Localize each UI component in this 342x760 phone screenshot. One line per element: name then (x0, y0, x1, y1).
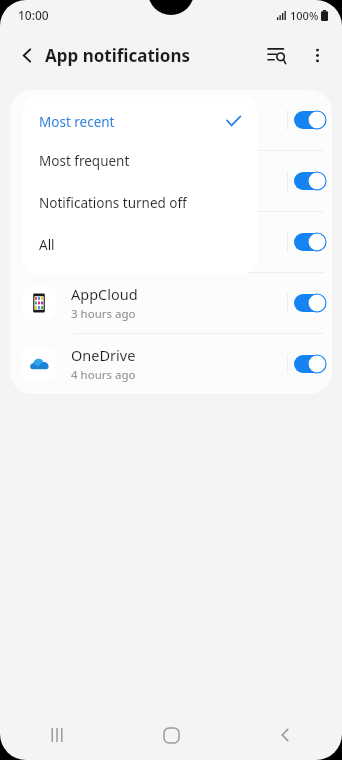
button[interactable]: Most frequent (22, 140, 258, 182)
staticText: All (39, 236, 241, 254)
staticText: 3 hours ago (71, 306, 136, 322)
staticText: Google Play Store (71, 162, 192, 182)
button[interactable]: Navigate up (7, 35, 47, 75)
button[interactable]: Google (10, 212, 332, 272)
staticText: App notifications (45, 44, 191, 67)
staticText: 10:00 (18, 7, 49, 23)
staticText: Notifications turned off (39, 194, 241, 212)
staticText: 100% (290, 8, 319, 23)
button[interactable]: Toggle notifications (288, 151, 332, 211)
button[interactable]: More options (297, 35, 337, 75)
button[interactable]: Search (257, 35, 297, 75)
staticText: 3 hours ago (71, 184, 136, 200)
button[interactable]: Home (114, 710, 228, 760)
button[interactable]: Recent apps (0, 710, 114, 760)
staticText: AppCloud (71, 284, 138, 304)
button[interactable]: OneDrive (10, 334, 332, 394)
staticText: Most frequent (39, 152, 241, 170)
staticText: 4 hours ago (71, 367, 136, 383)
button[interactable]: Toggle notifications (288, 212, 332, 272)
button[interactable]: Google Play Store (10, 151, 332, 211)
button[interactable]: Toggle notifications (10, 90, 332, 150)
button[interactable]: Notifications turned off (22, 182, 258, 224)
button[interactable]: Toggle notifications (288, 90, 332, 150)
staticText: Most recent (39, 113, 226, 131)
button[interactable]: Back (228, 710, 342, 760)
button[interactable]: All (22, 224, 258, 266)
button[interactable]: AppCloud (10, 273, 332, 333)
button[interactable]: Most recent (22, 103, 258, 140)
button[interactable]: Toggle notifications (288, 334, 332, 394)
button[interactable]: Toggle notifications (288, 273, 332, 333)
staticText: OneDrive (71, 345, 136, 365)
